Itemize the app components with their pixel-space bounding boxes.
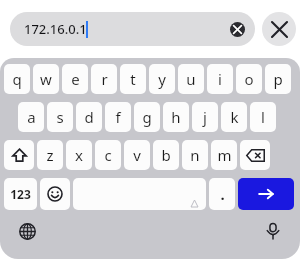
button[interactable]: y <box>149 64 175 94</box>
button[interactable]: Enter <box>238 178 294 210</box>
staticText: x <box>75 145 83 165</box>
button[interactable]: j <box>192 102 218 132</box>
button[interactable]: Shift <box>4 140 34 170</box>
button[interactable]: o <box>236 64 262 94</box>
staticText: d <box>84 107 94 127</box>
button[interactable]: l <box>250 102 276 132</box>
button[interactable]: t <box>120 64 146 94</box>
staticText: e <box>71 69 80 89</box>
button[interactable]: p <box>265 64 291 94</box>
staticText: i <box>218 69 222 89</box>
staticText: h <box>171 107 181 127</box>
button[interactable]: i <box>207 64 233 94</box>
button[interactable]: u <box>178 64 204 94</box>
staticText: f <box>115 107 121 127</box>
staticText: l <box>261 107 265 127</box>
button[interactable]: Emoji <box>40 178 70 210</box>
staticText: b <box>161 145 171 165</box>
staticText: j <box>203 107 207 127</box>
button[interactable]: x <box>66 140 92 170</box>
staticText: n <box>190 145 200 165</box>
button[interactable]: Voice input <box>260 218 286 244</box>
staticText: o <box>244 69 254 89</box>
button[interactable]: b <box>153 140 179 170</box>
staticText: v <box>133 145 141 165</box>
staticText: g <box>142 107 152 127</box>
staticText: . <box>220 184 225 204</box>
staticText: c <box>104 145 112 165</box>
staticText: z <box>46 145 54 165</box>
button[interactable]: 123 <box>4 178 37 210</box>
button[interactable]: a <box>18 102 44 132</box>
staticText: a <box>27 107 36 127</box>
staticText: y <box>158 69 166 89</box>
button[interactable]: w <box>33 64 59 94</box>
button[interactable]: h <box>163 102 189 132</box>
button[interactable]: m <box>211 140 237 170</box>
staticText: m <box>217 145 232 165</box>
button[interactable]: s <box>47 102 73 132</box>
button[interactable]: z <box>37 140 63 170</box>
button[interactable]: n <box>182 140 208 170</box>
button[interactable]: e <box>62 64 88 94</box>
staticText: p <box>273 69 283 89</box>
button[interactable]: k <box>221 102 247 132</box>
staticText: k <box>230 107 239 127</box>
staticText: q <box>12 69 22 89</box>
button[interactable]: g <box>134 102 160 132</box>
button[interactable]: Backspace <box>240 140 270 170</box>
staticText: r <box>101 69 108 89</box>
staticText: w <box>40 69 52 89</box>
staticText: 123 <box>10 186 31 202</box>
staticText: t <box>130 69 136 89</box>
staticText: 172.16.0.1 <box>24 20 87 38</box>
button[interactable]: Change language <box>14 218 40 244</box>
button[interactable]: c <box>95 140 121 170</box>
staticText: u <box>186 69 196 89</box>
button[interactable]: Space <box>73 178 206 210</box>
button[interactable]: Close <box>262 12 296 46</box>
button[interactable]: d <box>76 102 102 132</box>
staticText: s <box>56 107 64 127</box>
button[interactable]: r <box>91 64 117 94</box>
button[interactable]: 172.16.0.1 <box>10 12 255 46</box>
button[interactable]: v <box>124 140 150 170</box>
button[interactable]: f <box>105 102 131 132</box>
button[interactable]: Clear text <box>227 19 247 39</box>
button[interactable]: q <box>4 64 30 94</box>
button[interactable]: . <box>209 178 235 210</box>
